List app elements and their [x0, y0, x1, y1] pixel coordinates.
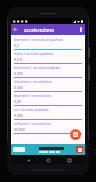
button[interactable]: chilometro / secondo quadrato: [14, 65, 82, 78]
button[interactable]: metro / secondo quadrato: [14, 51, 82, 64]
button[interactable]: decimetro / secondo al quadrato: [14, 37, 82, 50]
button[interactable]: cm / secondo quadrato: [14, 107, 82, 120]
staticText: millimetro / secondo/ora: [14, 122, 82, 126]
staticText: 0,000: [14, 85, 23, 90]
button[interactable]: Home: [44, 156, 52, 164]
button[interactable]: Back: [11, 25, 20, 34]
staticText: 0,000: [14, 71, 23, 76]
button[interactable]: Back: [24, 156, 32, 164]
button[interactable]: millimetro / secondo/ora: [14, 121, 82, 134]
staticText: 0,0: [14, 43, 19, 48]
staticText: decimetro / secondo/ora: [14, 94, 82, 98]
staticText: chilometro / secondo quadrato: [14, 66, 82, 70]
button[interactable]: Recent apps: [65, 156, 73, 164]
staticText: 0,000: [14, 113, 23, 118]
staticText: 0,00: [14, 99, 21, 104]
staticText: cm / secondo quadrato: [14, 108, 82, 112]
staticText: chilometro / secondo/ora: [14, 80, 82, 84]
staticText: decimetro / secondo al quadrato: [14, 38, 82, 42]
staticText: accelerazione: [24, 27, 54, 33]
staticText: 00,000: [14, 127, 25, 132]
button[interactable]: Convert: [70, 129, 81, 140]
button[interactable]: Advertisement: [11, 144, 85, 155]
staticText: metro / secondo quadrato: [14, 52, 82, 56]
button[interactable]: chilometro / secondo/ora: [14, 79, 82, 92]
button[interactable]: decimetro / secondo/ora: [14, 93, 82, 106]
staticText: 0,0 0: [14, 57, 22, 62]
button[interactable]: More options: [76, 25, 85, 34]
